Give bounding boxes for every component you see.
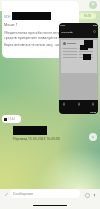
button[interactable]: Self destruct timer xyxy=(84,192,91,199)
staticText: 16:18 xyxy=(84,14,91,18)
button[interactable]: SCH xyxy=(2,1,79,58)
staticText: Тинькофф xyxy=(61,30,73,33)
staticText: Убедительная просьба после отправки сред… xyxy=(4,30,69,40)
button[interactable]: 13:44 xyxy=(2,115,21,123)
button[interactable]: Сообщение xyxy=(10,189,80,198)
button[interactable]: Назад xyxy=(0,3,19,8)
button[interactable]: Profile photo xyxy=(89,1,97,9)
button[interactable]: Scroll to bottom xyxy=(89,133,97,141)
staticText: Сообщение xyxy=(13,191,34,196)
staticText: SafeCash Exchange xyxy=(34,0,74,6)
staticText: Перевод 15.03.2023 16:20:00 xyxy=(13,136,60,141)
staticText: 10:24 xyxy=(60,24,66,27)
staticText: 13:44 xyxy=(8,117,15,121)
staticText: Карта активна в течении часу -часов xyxy=(4,42,65,47)
button[interactable]: Attach file xyxy=(2,190,10,198)
staticText: Моше 1 xyxy=(4,22,18,27)
button[interactable]: Record voice message xyxy=(91,192,98,199)
button[interactable]: 16:18 xyxy=(79,13,96,19)
staticText: 84% xyxy=(93,24,97,27)
button[interactable]: Photo xyxy=(59,23,98,114)
staticText: SCH xyxy=(4,14,11,19)
staticText: 16:18 xyxy=(90,110,97,113)
